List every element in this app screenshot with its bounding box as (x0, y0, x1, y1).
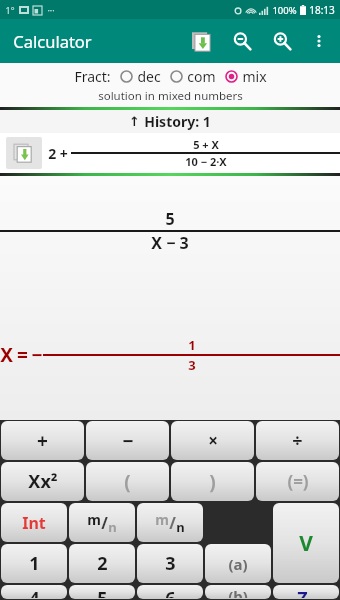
button[interactable]: 3 (137, 544, 203, 583)
button[interactable]: − (86, 421, 169, 460)
staticText: 6 (165, 586, 176, 598)
staticText: History: 1 (144, 112, 211, 131)
staticText: Z (297, 586, 308, 598)
staticText: × (208, 429, 218, 452)
staticText: ÷ (292, 428, 303, 453)
button[interactable]: 5 (69, 585, 135, 599)
staticText: 3 (188, 356, 196, 374)
staticText: ··· (47, 4, 55, 16)
staticText: 2 + (48, 144, 68, 163)
staticText: m (155, 510, 169, 529)
staticText: 5 (165, 208, 175, 230)
staticText: 3 (165, 551, 176, 576)
staticText: com (187, 67, 216, 86)
staticText: / (169, 512, 176, 534)
button[interactable]: Z (273, 585, 339, 599)
button[interactable]: ( (86, 462, 169, 501)
button[interactable]: (b) (205, 585, 271, 599)
button[interactable]: 6 (137, 585, 203, 599)
button[interactable]: Recall (6, 137, 42, 169)
staticText: n (176, 518, 185, 536)
staticText: = (17, 342, 28, 368)
staticText: 5 + X (193, 137, 219, 152)
staticText: dec (137, 67, 161, 86)
staticText: 1° (5, 4, 15, 16)
staticText: ) (209, 469, 216, 495)
button[interactable]: 1 (1, 544, 67, 583)
staticText: Xx² (28, 469, 58, 494)
button[interactable]: com (170, 67, 216, 86)
staticText: V (299, 529, 313, 558)
button[interactable]: (a) (205, 544, 271, 583)
staticText: 10 − 2·X (185, 154, 227, 169)
staticText: − (31, 342, 43, 368)
button[interactable]: m (137, 503, 203, 542)
button[interactable]: Int (1, 503, 67, 542)
staticText: Fract: (74, 67, 111, 86)
button[interactable]: ÷ (256, 421, 339, 460)
staticText: (=) (287, 470, 309, 493)
button[interactable]: (=) (256, 462, 339, 501)
staticText: − (122, 428, 134, 454)
staticText: (a) (228, 554, 248, 574)
staticText: 18:13 (309, 3, 335, 17)
staticText: X − 3 (151, 232, 189, 254)
staticText: n (308, 586, 316, 591)
staticText: 2 (97, 551, 108, 576)
staticText: 4 (29, 586, 40, 598)
button[interactable]: ↑ (0, 110, 340, 133)
button[interactable]: More options (302, 24, 336, 58)
staticText: solution in mixed numbers (98, 88, 243, 104)
button[interactable]: 2 (69, 544, 135, 583)
staticText: + (37, 428, 48, 454)
button[interactable]: ) (171, 462, 254, 501)
staticText: / (101, 512, 108, 534)
button[interactable]: + (1, 421, 84, 460)
staticText: 1 (188, 336, 196, 354)
staticText: ↑ (129, 114, 140, 129)
button[interactable]: 4 (1, 585, 67, 599)
button[interactable]: m (69, 503, 135, 542)
staticText: 100% (272, 4, 297, 17)
staticText: n (108, 518, 117, 536)
staticText: (b) (228, 586, 248, 598)
staticText: mix (242, 67, 267, 86)
staticText: 5 (97, 586, 108, 598)
staticText: Int (22, 512, 46, 534)
button[interactable]: V (273, 503, 339, 583)
button[interactable]: × (171, 421, 254, 460)
button[interactable]: mix (225, 67, 267, 86)
staticText: 1 (29, 551, 40, 576)
button[interactable]: Zoom in (262, 21, 302, 61)
button[interactable]: Save to history (182, 21, 222, 61)
staticText: X (0, 342, 13, 368)
button[interactable]: Xx² (1, 462, 84, 501)
button[interactable]: Zoom out (222, 21, 262, 61)
button[interactable]: dec (120, 67, 161, 86)
staticText: ( (124, 469, 131, 495)
staticText: m (87, 510, 101, 529)
staticText: Calculator (13, 30, 92, 52)
